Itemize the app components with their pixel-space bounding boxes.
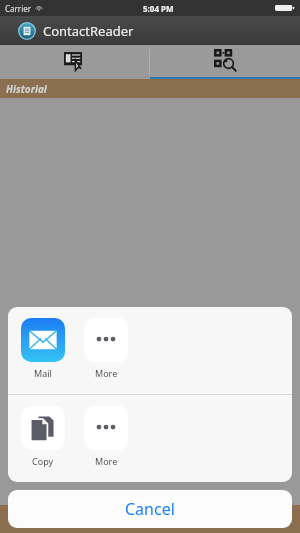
staticText: Copy — [32, 455, 54, 467]
button[interactable]: Escanear QR — [150, 45, 300, 79]
button[interactable]: Cancel — [8, 490, 292, 528]
button[interactable]: More — [83, 406, 129, 467]
staticText: ContactReader — [43, 22, 134, 40]
staticText: Historial — [6, 82, 47, 96]
staticText: Cancel — [125, 498, 175, 520]
staticText: 5:04 PM — [143, 3, 174, 14]
button[interactable]: Mail — [20, 318, 66, 379]
staticText: Carrier — [5, 3, 32, 14]
staticText: Mail — [34, 367, 52, 379]
button[interactable]: Contactos — [0, 45, 149, 79]
button[interactable]: More — [83, 318, 129, 379]
button[interactable]: Copy — [20, 406, 66, 467]
staticText: More — [95, 455, 118, 467]
staticText: More — [95, 367, 118, 379]
